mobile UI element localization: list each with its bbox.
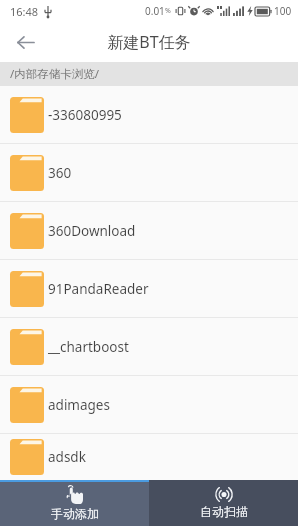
staticText: -336080995: [48, 106, 122, 124]
staticText: 360: [48, 164, 72, 182]
staticText: adsdk: [48, 448, 86, 466]
staticText: 100: [274, 4, 292, 18]
staticText: __chartboost: [48, 338, 129, 356]
staticText: 360Download: [48, 222, 136, 240]
staticText: 16:48: [10, 4, 39, 19]
button[interactable]: 360: [0, 144, 298, 201]
button[interactable]: __chartboost: [0, 318, 298, 375]
staticText: 手动添加: [51, 506, 99, 521]
staticText: adimages: [48, 396, 110, 414]
button[interactable]: adsdk: [0, 434, 298, 480]
staticText: /内部存储卡浏览/: [10, 66, 100, 82]
button[interactable]: -336080995: [0, 86, 298, 143]
button[interactable]: 360Download: [0, 202, 298, 259]
staticText: %: [165, 6, 171, 16]
button[interactable]: 自动扫描: [149, 480, 298, 526]
button[interactable]: Back: [8, 25, 42, 59]
staticText: 0.01: [145, 4, 165, 18]
button[interactable]: 91PandaReader: [0, 260, 298, 317]
staticText: 91PandaReader: [48, 280, 149, 298]
button[interactable]: 手动添加: [0, 480, 149, 526]
staticText: 新建BT任务: [107, 31, 191, 53]
button[interactable]: adimages: [0, 376, 298, 433]
staticText: 自动扫描: [200, 504, 248, 519]
